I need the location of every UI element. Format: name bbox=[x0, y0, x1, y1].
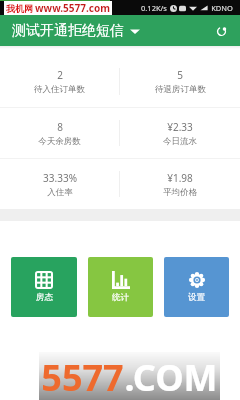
button[interactable]: ¥1.98 bbox=[120, 159, 240, 209]
staticText: 待退房订单数 bbox=[155, 84, 206, 95]
button[interactable]: 设置 bbox=[164, 257, 229, 317]
staticText: 平均价格 bbox=[163, 187, 197, 198]
button[interactable]: 房态 bbox=[11, 257, 77, 317]
staticText: 设置 bbox=[188, 292, 205, 303]
staticText: 测试开通拒绝短信 bbox=[12, 22, 124, 40]
staticText: KDNO bbox=[211, 3, 233, 13]
staticText: 今日流水 bbox=[163, 136, 197, 147]
staticText: 33.33% bbox=[43, 171, 77, 185]
button[interactable]: 测试开通拒绝短信 bbox=[0, 22, 148, 40]
staticText: 5 bbox=[177, 68, 183, 82]
staticText: 待入住订单数 bbox=[34, 84, 85, 95]
button[interactable]: Refresh bbox=[211, 21, 231, 41]
button[interactable]: 5 bbox=[120, 49, 240, 107]
staticText: 统计 bbox=[112, 292, 129, 303]
button[interactable]: 33.33% bbox=[0, 159, 119, 209]
button[interactable]: ¥2.33 bbox=[120, 108, 240, 158]
staticText: 8 bbox=[57, 120, 63, 134]
button[interactable]: 统计 bbox=[88, 257, 153, 317]
button[interactable]: 2 bbox=[0, 49, 119, 107]
staticText: 房态 bbox=[36, 292, 53, 303]
staticText: 2 bbox=[57, 68, 63, 82]
staticText: 5577 bbox=[41, 353, 124, 400]
staticText: www.5577.com bbox=[35, 1, 110, 15]
button[interactable]: 8 bbox=[0, 108, 119, 158]
staticText: ¥1.98 bbox=[167, 171, 193, 185]
staticText: 今天余房数 bbox=[38, 136, 81, 147]
staticText: 我机网 bbox=[6, 3, 33, 14]
staticText: .COM bbox=[124, 353, 218, 400]
staticText: 入住率 bbox=[47, 187, 73, 198]
staticText: ¥2.33 bbox=[167, 120, 193, 134]
staticText: 0.12K/s bbox=[141, 3, 167, 13]
